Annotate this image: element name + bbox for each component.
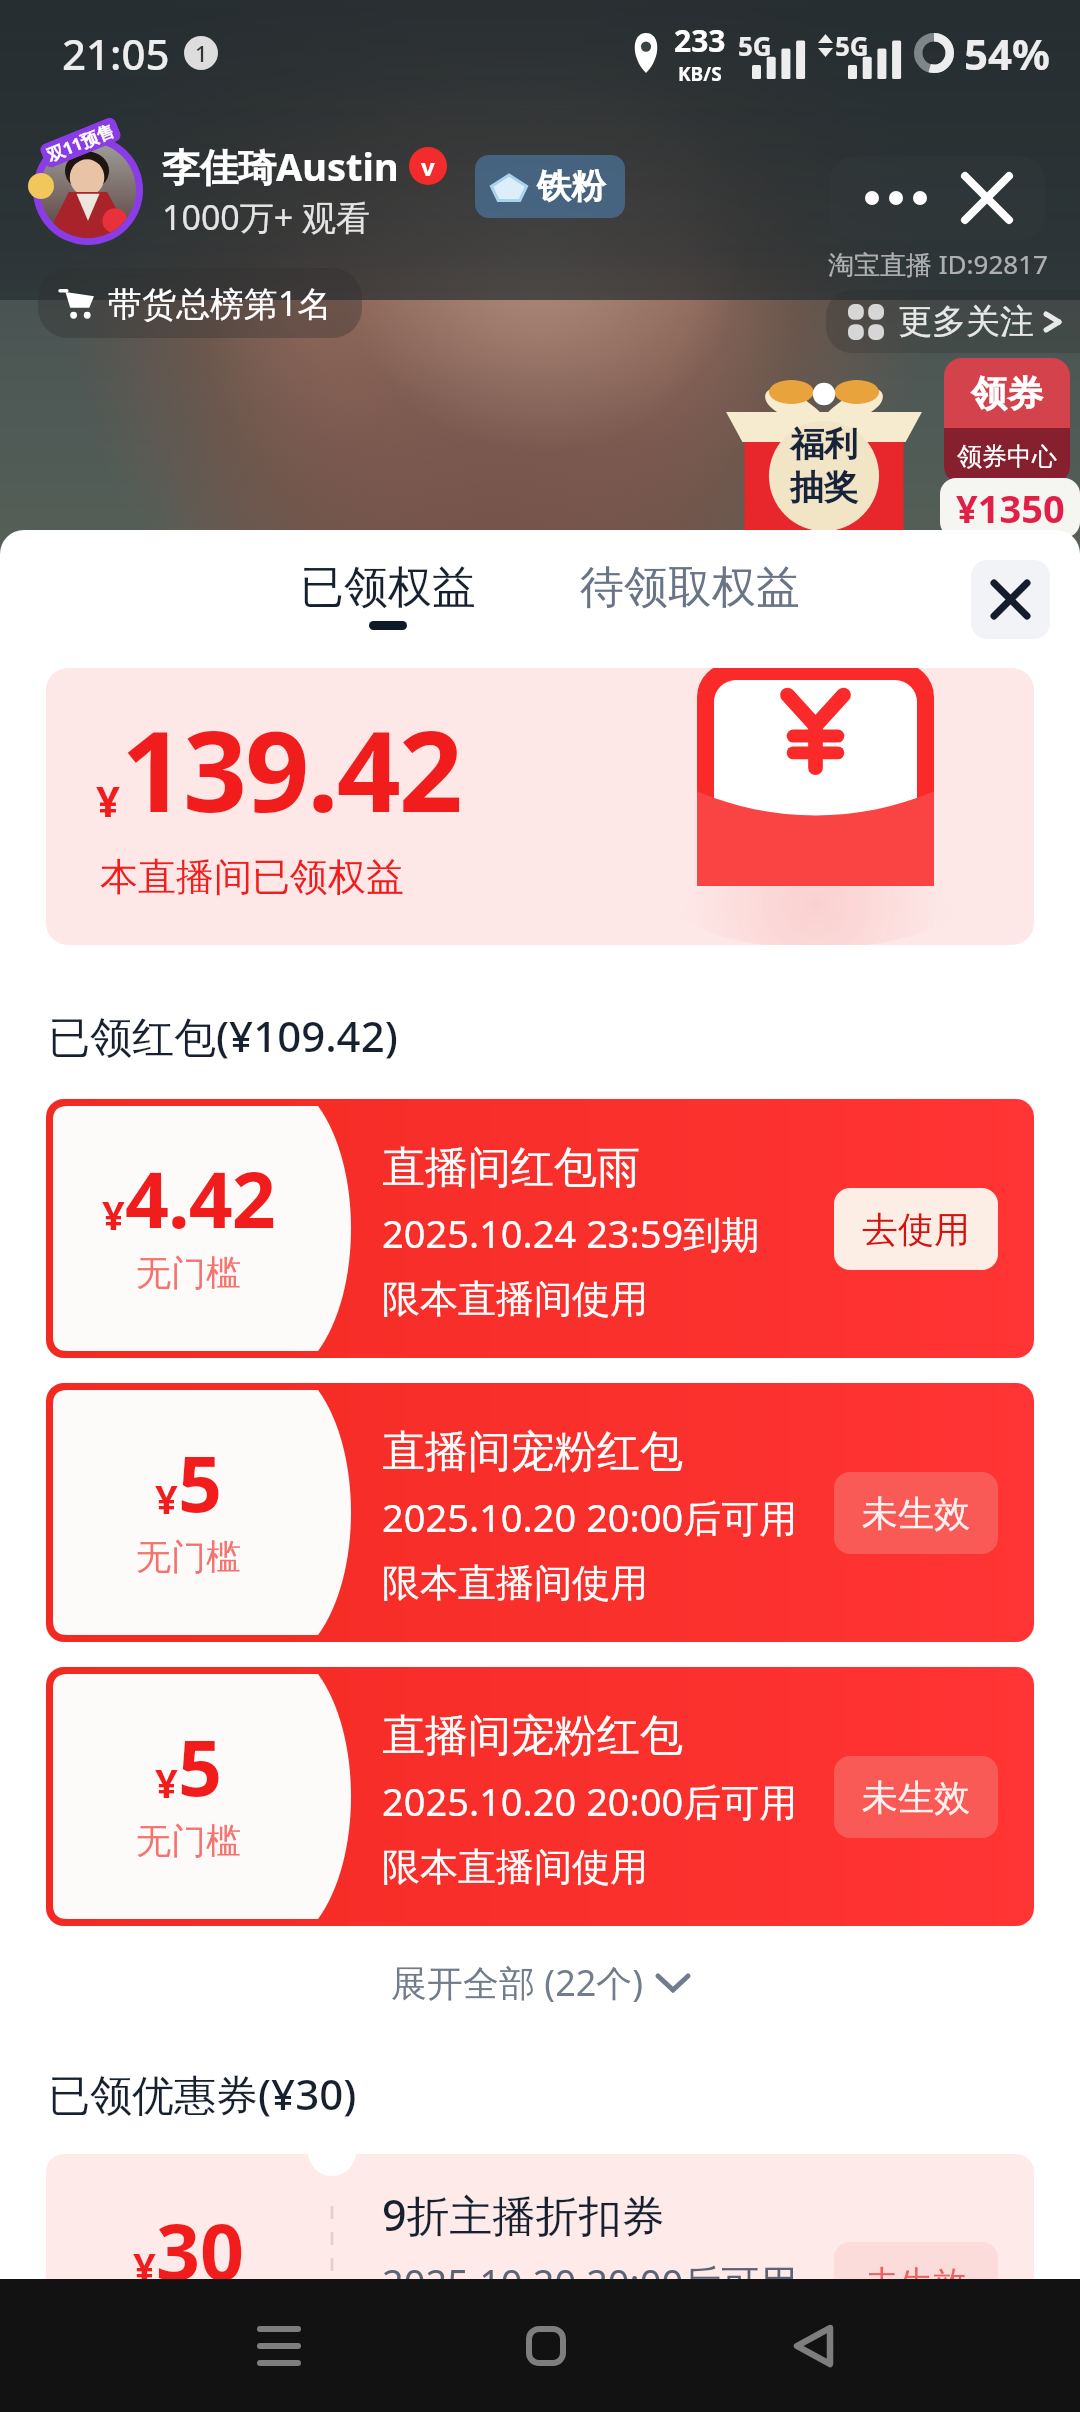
staticText: 2025.10.24 23:59到期	[382, 1207, 760, 1259]
staticText: 4.42	[125, 1146, 275, 1251]
staticText: 21:05	[62, 25, 170, 82]
staticText: 更多关注	[898, 300, 1034, 343]
staticText: 2025.10.20 20:00后可用	[382, 2256, 798, 2308]
staticText: 限本直播间使用	[382, 1843, 648, 1891]
button[interactable]: ¥	[46, 1667, 1034, 1926]
staticText: KB/S	[678, 61, 722, 87]
staticText: 直播间宠粉红包	[382, 1425, 683, 1479]
staticText: 5	[178, 1714, 222, 1819]
staticText: 福利	[790, 423, 858, 466]
staticText: 直播间宠粉红包	[382, 1709, 683, 1763]
button[interactable]: More options	[829, 156, 945, 240]
staticText: 展开全部 (22个)	[391, 1958, 644, 2007]
staticText: 已领权益	[300, 560, 476, 615]
staticText: 未生效	[865, 2262, 967, 2305]
staticText: 限本直播间使用	[382, 2324, 648, 2372]
staticText: 未生效	[862, 1775, 970, 1820]
staticText: 直播间红包雨	[382, 1141, 640, 1195]
staticText: 139.42	[121, 692, 461, 845]
staticText: 待领取权益	[580, 560, 800, 615]
staticText: 限本直播间使用	[382, 1275, 648, 1323]
button[interactable]: ¥	[46, 1099, 1034, 1358]
button[interactable]: 带货总榜第1名	[38, 268, 362, 338]
staticText: 无门槛	[136, 1535, 241, 1579]
staticText: 铁粉	[537, 165, 605, 208]
button[interactable]: Recent apps	[242, 2309, 316, 2383]
staticText: 本直播间已领权益	[100, 853, 404, 901]
staticText: 淘宝直播 ID:92817	[828, 246, 1048, 282]
staticText: 抽奖	[790, 466, 858, 509]
staticText: ¥	[96, 772, 121, 829]
button[interactable]: 待领取权益	[574, 560, 806, 615]
staticText: 领券中心	[957, 441, 1057, 472]
staticText: ¥1350	[956, 482, 1065, 534]
button[interactable]: 未生效	[834, 1472, 998, 1554]
staticText: 2025.10.20 20:00后可用	[382, 1775, 798, 1827]
staticText: 去使用	[862, 1207, 970, 1252]
staticText: 54%	[964, 25, 1050, 82]
staticText: v	[421, 150, 435, 183]
button[interactable]: Back	[776, 2309, 850, 2383]
button[interactable]: ¥	[46, 1383, 1034, 1642]
staticText: 带货总榜第1名	[108, 280, 332, 326]
staticText: 李佳琦Austin	[162, 140, 399, 192]
button[interactable]: 未生效	[834, 1756, 998, 1838]
staticText: 已领优惠券(¥30)	[48, 2065, 357, 2122]
button[interactable]: 更多关注	[826, 290, 1080, 353]
staticText: 未生效	[862, 1491, 970, 1536]
staticText: ¥	[102, 1187, 125, 1241]
staticText: 限本直播间使用	[382, 1559, 648, 1607]
button[interactable]: Close	[971, 560, 1050, 639]
button[interactable]: ¥1350	[940, 478, 1080, 538]
button[interactable]: 未生效	[834, 2242, 998, 2324]
staticText: 1000万+ 观看	[162, 194, 371, 240]
staticText: 5	[178, 1430, 222, 1535]
staticText: 已领红包(¥109.42)	[48, 1007, 398, 1064]
button[interactable]: Home	[509, 2309, 583, 2383]
staticText: 无门槛	[136, 1819, 241, 1863]
staticText: 9折主播折扣券	[382, 2185, 665, 2244]
button[interactable]: 铁粉	[475, 155, 625, 218]
staticText: ¥	[155, 1755, 178, 1809]
staticText: 5G	[835, 28, 869, 63]
button[interactable]: 已领权益	[294, 560, 482, 630]
staticText: ¥	[133, 2239, 156, 2293]
button[interactable]: 领券	[944, 358, 1070, 484]
staticText: 1	[195, 38, 208, 68]
button[interactable]: ¥	[46, 2154, 1034, 2412]
staticText: ¥	[155, 1471, 178, 1525]
staticText: 233	[674, 20, 726, 61]
button[interactable]: Close live room	[945, 156, 1045, 240]
staticText: 无门槛	[136, 1251, 241, 1295]
staticText: 领券	[971, 371, 1043, 416]
button[interactable]: 去使用	[834, 1188, 998, 1270]
staticText: 30	[156, 2198, 245, 2303]
staticText: 2025.10.20 20:00后可用	[382, 1491, 798, 1543]
button[interactable]: 展开全部 (22个)	[0, 1946, 1080, 2019]
staticText: 5G	[738, 28, 772, 63]
staticText: 双11预售	[43, 118, 118, 166]
